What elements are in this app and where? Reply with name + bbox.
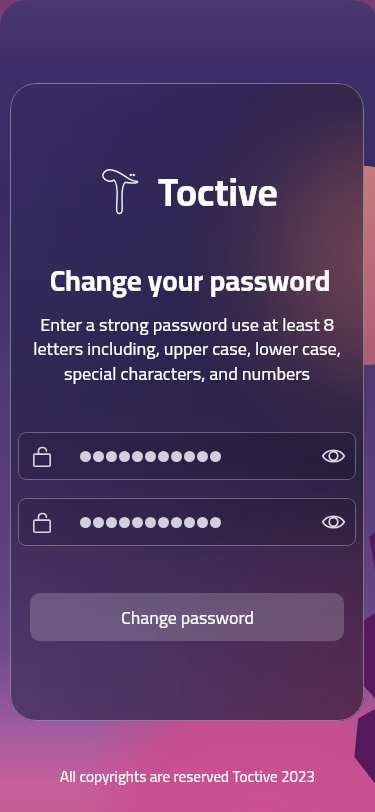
staticText: Change password	[121, 601, 254, 634]
button[interactable]: Show password	[18, 498, 356, 546]
staticText: All copyrights are reserved Toctive 2023	[60, 762, 316, 790]
staticText: Toctive	[158, 155, 278, 228]
button[interactable]: Show password	[315, 504, 351, 540]
staticText: Enter a strong password use at least 8 l…	[22, 307, 352, 390]
button[interactable]: Change password	[30, 593, 344, 641]
button[interactable]: Show password	[18, 432, 356, 480]
button[interactable]: Show password	[315, 438, 351, 474]
staticText: Change your password	[13, 254, 364, 308]
